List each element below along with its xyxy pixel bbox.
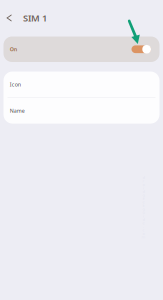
button[interactable]: Back (0, 7, 18, 29)
staticText: Icon (10, 81, 21, 88)
staticText: Name (10, 107, 25, 114)
staticText: SIM 1 (23, 12, 47, 24)
button[interactable]: Icon (3, 71, 159, 97)
staticText: On (10, 46, 17, 53)
button[interactable]: Name (3, 98, 159, 124)
button[interactable]: On (3, 36, 159, 62)
